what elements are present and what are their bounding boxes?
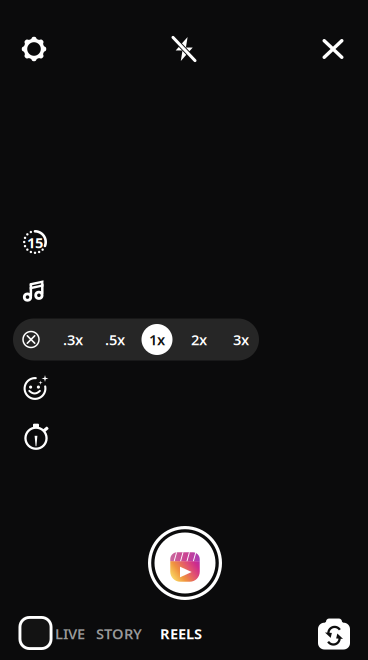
staticText: STORY xyxy=(96,624,142,643)
button[interactable]: Clear speed xyxy=(10,318,52,360)
button[interactable]: LIVE xyxy=(55,616,85,650)
button[interactable]: Switch camera xyxy=(312,612,356,656)
button[interactable]: Flash off xyxy=(162,27,206,71)
button[interactable]: Gallery xyxy=(12,610,58,656)
staticText: 3x xyxy=(233,330,249,349)
button[interactable]: Record xyxy=(144,522,226,604)
button[interactable]: STORY xyxy=(96,616,142,650)
staticText: 1x xyxy=(149,330,165,349)
button[interactable]: .5x xyxy=(94,318,136,360)
button[interactable]: Timer xyxy=(15,416,57,458)
button[interactable]: Close xyxy=(311,27,355,71)
button[interactable]: 3x xyxy=(220,318,262,360)
button[interactable]: Add audio xyxy=(15,271,55,311)
staticText: 15 xyxy=(27,233,43,252)
staticText: 2x xyxy=(191,330,207,349)
staticText: LIVE xyxy=(55,624,85,643)
button[interactable]: 1x xyxy=(136,318,178,360)
button[interactable]: 2x xyxy=(178,318,220,360)
button[interactable]: Effects xyxy=(15,368,55,408)
staticText: .3x xyxy=(63,330,83,349)
staticText: REELS xyxy=(160,624,202,643)
staticText: .5x xyxy=(105,330,125,349)
button[interactable]: REELS xyxy=(160,616,202,650)
button[interactable]: .3x xyxy=(52,318,94,360)
button[interactable]: Camera settings xyxy=(12,27,56,71)
button[interactable]: Video length, 15 seconds xyxy=(15,222,55,262)
